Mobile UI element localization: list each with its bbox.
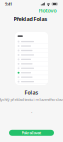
staticText: Rychlý překlad textu i mluveného slova: [0, 97, 63, 102]
staticText: Hotovo: [38, 7, 56, 14]
button[interactable]: Hotovo: [37, 5, 58, 16]
staticText: Folas: [24, 89, 38, 96]
staticText: Pokračovat: [21, 130, 41, 135]
staticText: ·: [31, 108, 32, 116]
button[interactable]: Pokračovat: [9, 130, 54, 136]
staticText: Překlad Folas: [13, 15, 47, 23]
staticText: 9:41: [5, 1, 12, 7]
